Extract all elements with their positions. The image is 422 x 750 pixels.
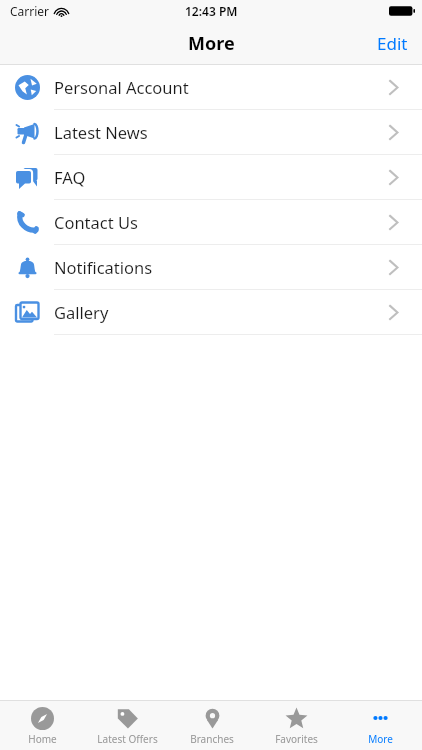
button[interactable]: Latest Offers: [85, 701, 170, 750]
button[interactable]: Edit: [363, 26, 422, 61]
button[interactable]: FAQ: [0, 155, 422, 200]
staticText: More: [368, 732, 393, 746]
staticText: Home: [28, 732, 57, 746]
button[interactable]: Favorites: [254, 701, 338, 750]
staticText: Favorites: [275, 732, 318, 746]
staticText: Contact Us: [54, 211, 138, 233]
staticText: Carrier: [10, 3, 50, 19]
staticText: Latest News: [54, 121, 148, 143]
staticText: Gallery: [54, 301, 109, 323]
staticText: 12:43 PM: [185, 3, 238, 19]
button[interactable]: Branches: [170, 701, 254, 750]
button[interactable]: Personal Account: [0, 65, 422, 110]
button[interactable]: Gallery: [0, 290, 422, 335]
staticText: Edit: [377, 32, 408, 55]
staticText: Latest Offers: [97, 732, 158, 746]
button[interactable]: Home: [0, 701, 85, 750]
staticText: Notifications: [54, 256, 153, 278]
staticText: Branches: [190, 732, 234, 746]
staticText: More: [188, 31, 235, 56]
staticText: FAQ: [54, 166, 86, 188]
button[interactable]: Notifications: [0, 245, 422, 290]
button[interactable]: Contact Us: [0, 200, 422, 245]
button[interactable]: Latest News: [0, 110, 422, 155]
button[interactable]: More: [338, 701, 422, 750]
staticText: Personal Account: [54, 76, 189, 98]
